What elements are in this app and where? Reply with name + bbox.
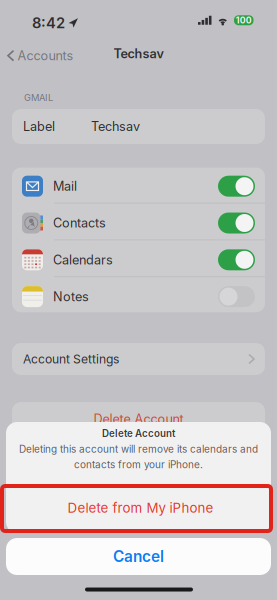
staticText: Mail [53, 178, 77, 194]
button[interactable]: Notes [12, 277, 265, 313]
button[interactable]: Delete from My iPhone [8, 485, 273, 531]
staticText: Label [23, 119, 55, 134]
staticText: Delete from My iPhone [67, 500, 213, 516]
button[interactable]: Cancel [6, 538, 271, 575]
button[interactable]: Delete Account [12, 402, 265, 436]
staticText: Accounts [17, 48, 73, 63]
staticText: GMAIL [24, 92, 53, 103]
staticText: Techsav [91, 119, 140, 134]
staticText: Delete Account [102, 427, 175, 439]
button[interactable]: Account Settings [12, 343, 265, 375]
button[interactable]: Accounts [8, 42, 88, 69]
staticText: Techsav [113, 46, 163, 61]
button[interactable]: Calendars [12, 240, 265, 276]
staticText: 100 [236, 15, 252, 25]
button[interactable]: Mail [12, 167, 265, 203]
staticText: Delete Account [93, 411, 183, 427]
staticText: Account Settings [23, 352, 119, 366]
staticText: Cancel [113, 547, 164, 566]
staticText: Notes [53, 289, 89, 304]
staticText: Calendars [53, 252, 113, 267]
staticText: Contacts [53, 215, 106, 231]
staticText: 8:42 [32, 14, 65, 32]
staticText: Deleting this account will remove its ca… [19, 443, 258, 455]
staticText: contacts from your iPhone. [74, 459, 203, 471]
button[interactable]: Contacts [12, 203, 265, 239]
